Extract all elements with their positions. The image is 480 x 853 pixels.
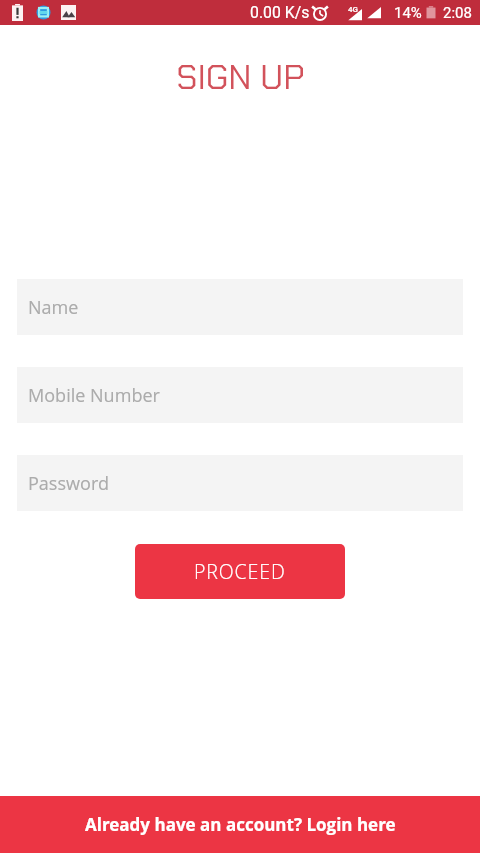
button[interactable]: Mobile Number [17, 367, 463, 423]
other: Screenshot [61, 5, 76, 20]
staticText: Already have an account? Login here [85, 813, 396, 836]
staticText: Mobile Number [28, 383, 160, 408]
staticText: PROCEED [194, 558, 286, 585]
button[interactable]: Name [17, 279, 463, 335]
button[interactable]: PROCEED [135, 544, 345, 599]
other: Sync [37, 5, 50, 20]
staticText: Name [28, 295, 79, 320]
staticText: 4G [348, 5, 358, 14]
staticText: 2:08 [443, 4, 472, 22]
button[interactable]: Password [17, 455, 463, 511]
other: Signal strength [348, 8, 362, 21]
staticText: 0.00 K/s [250, 3, 310, 22]
other: Battery alert [12, 4, 23, 21]
other: Signal strength [367, 6, 381, 19]
button[interactable]: Already have an account? Login here [0, 796, 480, 853]
other: Battery [426, 5, 436, 20]
staticText: 14% [394, 4, 422, 22]
staticText: Password [28, 471, 109, 496]
staticText: SIGN UP [176, 55, 305, 100]
other: Alarm [312, 5, 328, 21]
